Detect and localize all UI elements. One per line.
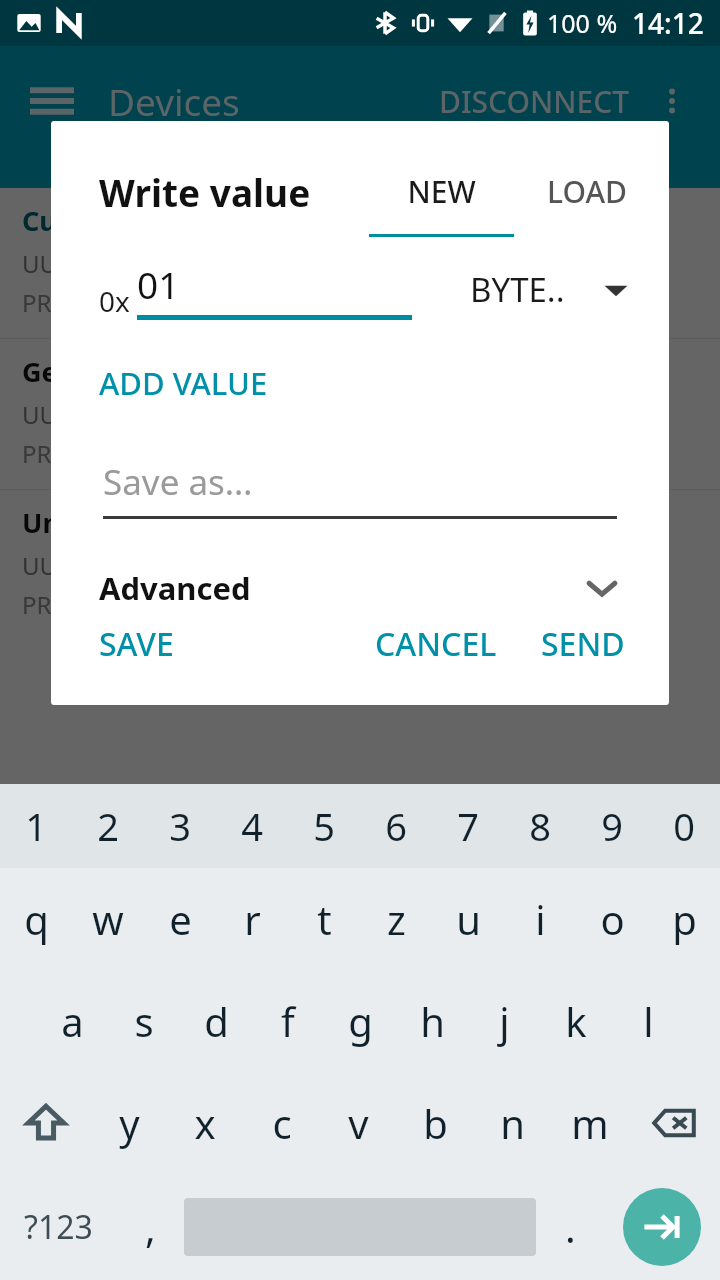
staticText: d <box>204 994 229 1048</box>
staticText: 14:12 <box>632 4 704 42</box>
staticText: 8 <box>529 800 551 852</box>
button[interactable]: a <box>36 970 108 1072</box>
staticText: b <box>423 1096 448 1150</box>
button[interactable]: ADD VALUE <box>99 362 268 404</box>
staticText: z <box>387 892 406 946</box>
staticText: m <box>571 1096 609 1150</box>
staticText: 0 <box>673 800 695 852</box>
button[interactable]: 1 <box>0 784 72 868</box>
staticText: LOAD <box>547 171 627 212</box>
staticText: f <box>281 994 295 1048</box>
staticText: Current Time Service <box>22 202 303 239</box>
button[interactable]: Shift <box>0 1072 91 1174</box>
staticText: PRIMARY SERVICE <box>22 437 224 470</box>
staticText: t <box>317 892 332 946</box>
staticText: 4 <box>241 800 263 852</box>
button[interactable]: q <box>0 868 72 970</box>
button[interactable]: n <box>474 1072 551 1174</box>
staticText: PRIMARY SERVICE <box>22 286 224 319</box>
button[interactable]: CANCEL <box>375 622 497 666</box>
button[interactable]: j <box>468 970 540 1072</box>
button[interactable]: o <box>576 868 648 970</box>
staticText: ?123 <box>24 1205 93 1249</box>
button[interactable]: 9 <box>576 784 648 868</box>
staticText: w <box>92 892 124 946</box>
button[interactable]: z <box>360 868 432 970</box>
button[interactable]: c <box>243 1072 320 1174</box>
staticText: 6 <box>385 800 407 852</box>
staticText: UUID: 0x1805 <box>22 549 177 582</box>
staticText: a <box>61 994 84 1048</box>
button[interactable]: l <box>612 970 684 1072</box>
staticText: u <box>456 892 481 946</box>
staticText: Unknown Service <box>22 504 255 541</box>
button[interactable]: SAVE <box>99 622 174 666</box>
button[interactable]: d <box>180 970 252 1072</box>
button[interactable]: DISCONNECT <box>439 81 630 122</box>
button[interactable]: 7 <box>432 784 504 868</box>
button[interactable]: 2 <box>72 784 144 868</box>
button[interactable]: Enter <box>623 1188 701 1266</box>
button[interactable]: m <box>551 1072 628 1174</box>
button[interactable]: b <box>397 1072 474 1174</box>
staticText: n <box>500 1096 525 1150</box>
staticText: 0x <box>99 282 130 320</box>
staticText: . <box>565 1200 576 1254</box>
button[interactable]: g <box>324 970 396 1072</box>
staticText: v <box>348 1096 369 1150</box>
button[interactable]: 3 <box>144 784 216 868</box>
button[interactable]: Backspace <box>628 1072 720 1174</box>
staticText: Generic Attribute <box>22 353 258 390</box>
staticText: r <box>244 892 261 946</box>
button[interactable]: 6 <box>360 784 432 868</box>
button[interactable]: r <box>216 868 288 970</box>
staticText: p <box>672 892 697 946</box>
staticText: j <box>499 994 510 1048</box>
button[interactable]: f <box>252 970 324 1072</box>
staticText: 3 <box>169 800 191 852</box>
button[interactable]: . <box>536 1174 604 1280</box>
staticText: UUID: 0x1805 <box>22 398 177 431</box>
staticText: ADD VALUE <box>99 362 268 404</box>
button[interactable]: p <box>648 868 720 970</box>
button[interactable]: w <box>72 868 144 970</box>
staticText: Advanced <box>99 567 251 609</box>
staticText: e <box>169 892 192 946</box>
button[interactable]: u <box>432 868 504 970</box>
button[interactable]: h <box>396 970 468 1072</box>
button[interactable]: x <box>167 1072 243 1174</box>
button[interactable]: v <box>320 1072 397 1174</box>
button[interactable]: s <box>108 970 180 1072</box>
button[interactable]: 0 <box>648 784 720 868</box>
staticText: UUID: 0x1805 <box>22 247 177 280</box>
button[interactable]: NEW <box>369 147 514 237</box>
button[interactable]: i <box>504 868 576 970</box>
staticText: CANCEL <box>375 622 497 666</box>
staticText: 1 <box>25 800 47 852</box>
button[interactable]: 8 <box>504 784 576 868</box>
staticText: SEND <box>541 622 625 666</box>
button[interactable]: e <box>144 868 216 970</box>
button[interactable]: More options <box>648 77 696 125</box>
button[interactable]: Advanced <box>99 567 619 609</box>
button[interactable]: k <box>540 970 612 1072</box>
staticText: 9 <box>601 800 623 852</box>
button[interactable]: 4 <box>216 784 288 868</box>
button[interactable]: , <box>116 1174 184 1280</box>
staticText: s <box>134 994 154 1048</box>
button[interactable]: Save as… <box>103 458 617 519</box>
button[interactable]: t <box>288 868 360 970</box>
staticText: c <box>272 1096 292 1150</box>
button[interactable]: 5 <box>288 784 360 868</box>
staticText: o <box>600 892 625 946</box>
button[interactable]: y <box>91 1072 167 1174</box>
staticText: Save as… <box>103 458 253 506</box>
staticText: Devices <box>108 76 240 126</box>
staticText: l <box>643 994 654 1048</box>
button[interactable]: SEND <box>541 622 625 666</box>
button[interactable]: BYTE.. <box>470 267 629 312</box>
button[interactable]: LOAD <box>514 147 659 237</box>
button[interactable]: Open navigation drawer <box>24 73 80 129</box>
button[interactable]: ?123 <box>0 1174 116 1280</box>
